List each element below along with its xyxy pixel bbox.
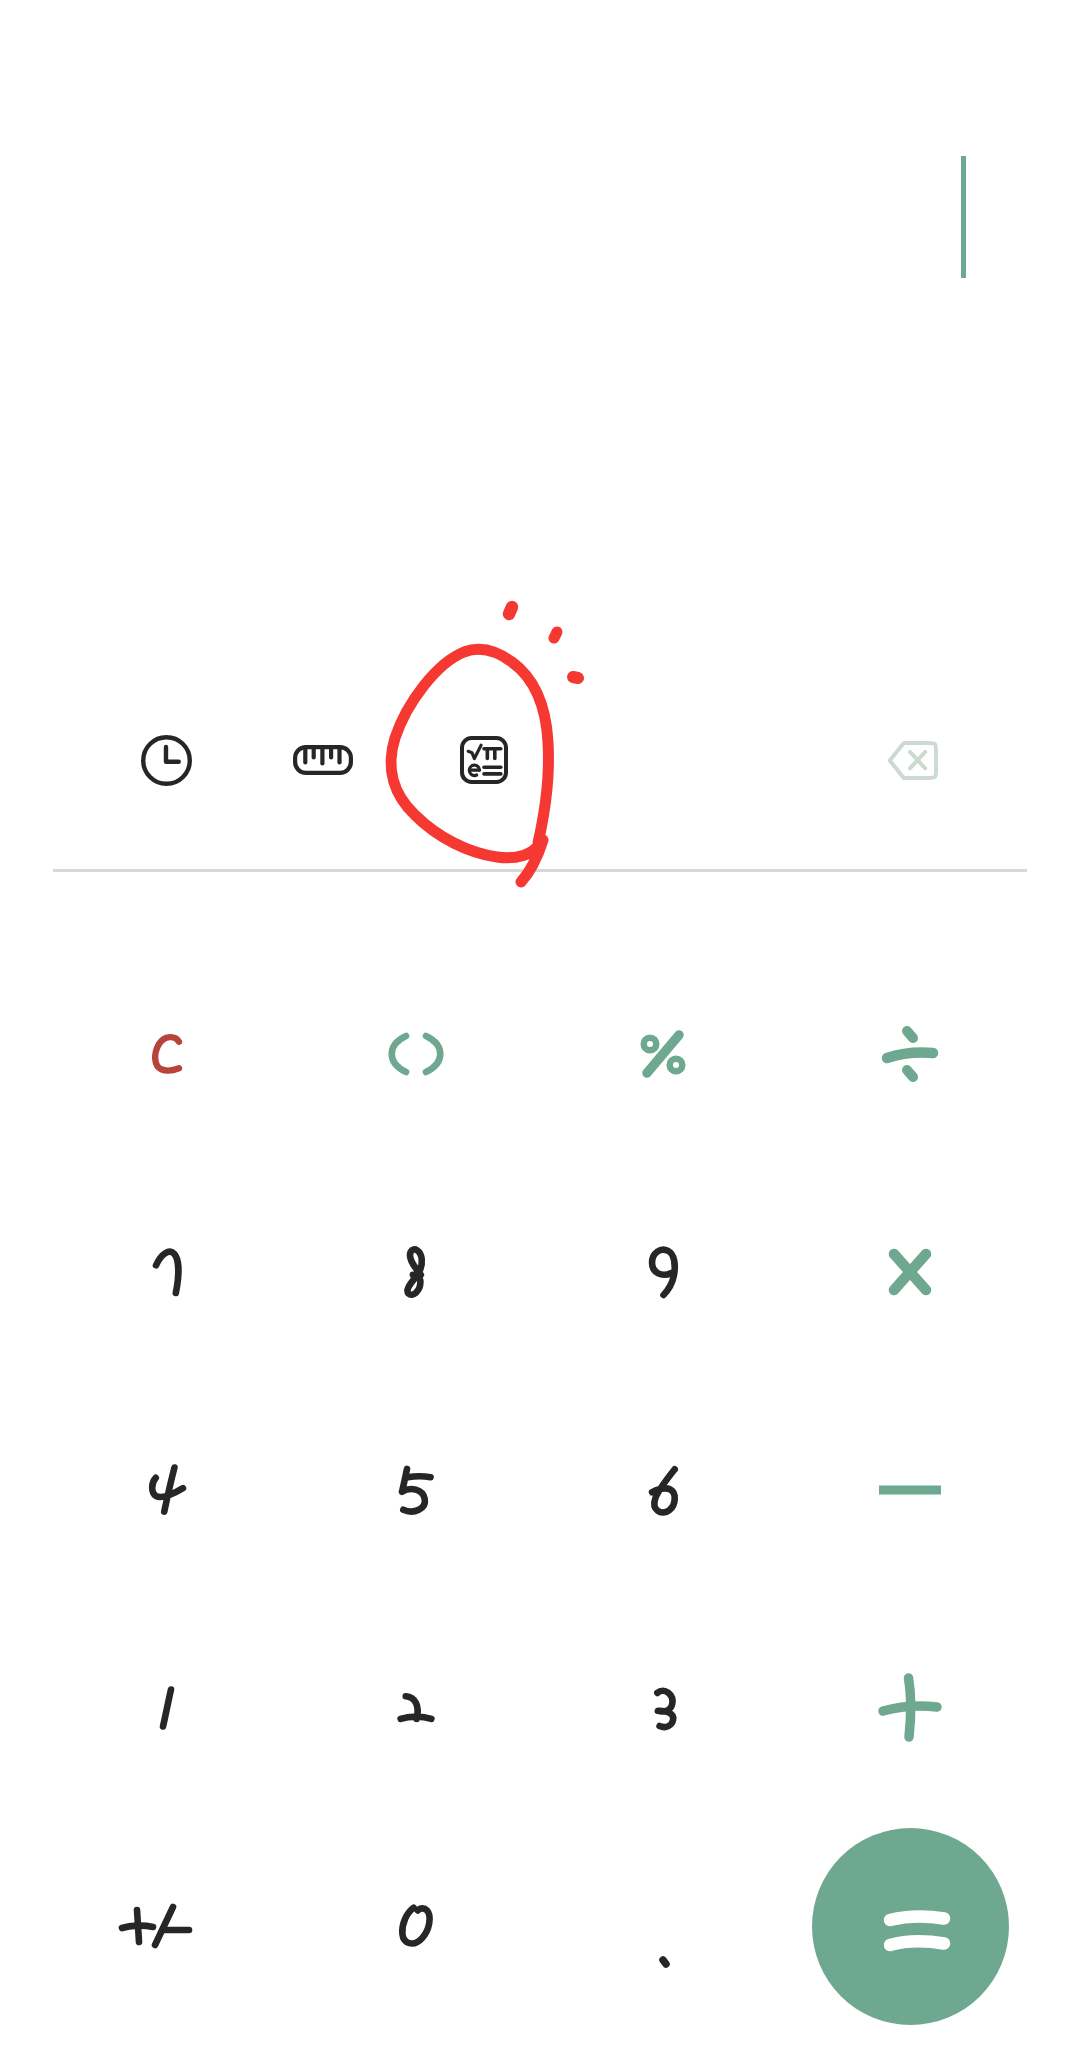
- button[interactable]: Multiply: [795, 1172, 1025, 1372]
- button[interactable]: Scientific functions: [429, 705, 539, 815]
- button[interactable]: 0: [299, 1826, 529, 2026]
- button[interactable]: Backspace: [857, 705, 967, 815]
- button[interactable]: 4: [51, 1390, 281, 1590]
- button[interactable]: 2: [299, 1608, 529, 1808]
- button[interactable]: Clear: [51, 954, 281, 1154]
- button[interactable]: Minus: [795, 1390, 1025, 1590]
- button[interactable]: Parentheses: [299, 954, 529, 1154]
- button[interactable]: 6: [547, 1390, 777, 1590]
- button[interactable]: Equals: [812, 1828, 1009, 2025]
- button[interactable]: Unit converter: [268, 705, 378, 815]
- button[interactable]: Decimal point: [547, 1826, 777, 2026]
- button[interactable]: 3: [547, 1608, 777, 1808]
- button[interactable]: Percent: [547, 954, 777, 1154]
- button[interactable]: 7: [51, 1172, 281, 1372]
- button[interactable]: 8: [299, 1172, 529, 1372]
- button[interactable]: 9: [547, 1172, 777, 1372]
- button[interactable]: Plus minus: [51, 1826, 281, 2026]
- button[interactable]: History: [111, 705, 221, 815]
- button[interactable]: 1: [51, 1608, 281, 1808]
- button[interactable]: Divide: [795, 954, 1025, 1154]
- button[interactable]: Plus: [795, 1608, 1025, 1808]
- button[interactable]: 5: [299, 1390, 529, 1590]
